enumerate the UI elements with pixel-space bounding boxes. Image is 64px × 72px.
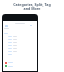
staticText: Categories, Split, Tag and More [13,2,51,11]
